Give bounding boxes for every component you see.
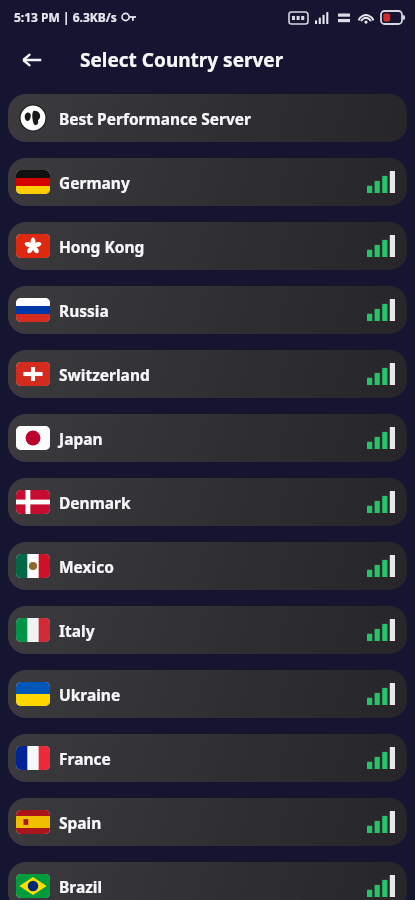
- staticText: Switzerland: [59, 364, 150, 385]
- button[interactable]: Japan: [8, 414, 407, 462]
- button[interactable]: Denmark: [8, 478, 407, 526]
- staticText: Japan: [59, 428, 103, 449]
- button[interactable]: Italy: [8, 606, 407, 654]
- staticText: Select Country server: [80, 47, 284, 73]
- button[interactable]: Russia: [8, 286, 407, 334]
- staticText: Germany: [59, 172, 130, 193]
- staticText: Spain: [59, 812, 102, 833]
- button[interactable]: Hong Kong: [8, 222, 407, 270]
- staticText: Ukraine: [59, 684, 121, 705]
- staticText: Hong Kong: [59, 236, 145, 257]
- button[interactable]: France: [8, 734, 407, 782]
- button[interactable]: Germany: [8, 158, 407, 206]
- staticText: Denmark: [59, 492, 131, 513]
- button[interactable]: Switzerland: [8, 350, 407, 398]
- staticText: Brazil: [59, 876, 103, 897]
- staticText: France: [59, 748, 111, 769]
- staticText: Russia: [59, 300, 109, 321]
- staticText: 5:13 PM | 6.3KB/s: [14, 9, 117, 25]
- button[interactable]: Ukraine: [8, 670, 407, 718]
- button[interactable]: Mexico: [8, 542, 407, 590]
- button[interactable]: Back: [12, 40, 52, 80]
- button[interactable]: Spain: [8, 798, 407, 846]
- staticText: Italy: [59, 620, 95, 641]
- staticText: Best Performance Server: [59, 108, 252, 129]
- staticText: Mexico: [59, 556, 114, 577]
- button[interactable]: Best Performance Server: [8, 94, 407, 142]
- button[interactable]: Brazil: [8, 862, 407, 900]
